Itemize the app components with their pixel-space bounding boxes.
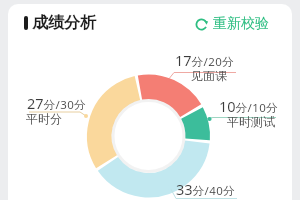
staticText: 33分/40分 <box>176 179 236 199</box>
staticText: 见面课 <box>191 68 227 83</box>
staticText: 平时分 <box>26 111 62 126</box>
staticText: 重新校验 <box>213 15 269 33</box>
staticText: 平时测试 <box>227 114 275 129</box>
staticText: 27分/30分 <box>27 93 87 113</box>
staticText: 成绩分析 <box>32 13 96 33</box>
staticText: 17分/20分 <box>175 50 235 70</box>
staticText: 10分/10分 <box>219 96 279 116</box>
button[interactable]: 重新校验 <box>195 15 269 33</box>
